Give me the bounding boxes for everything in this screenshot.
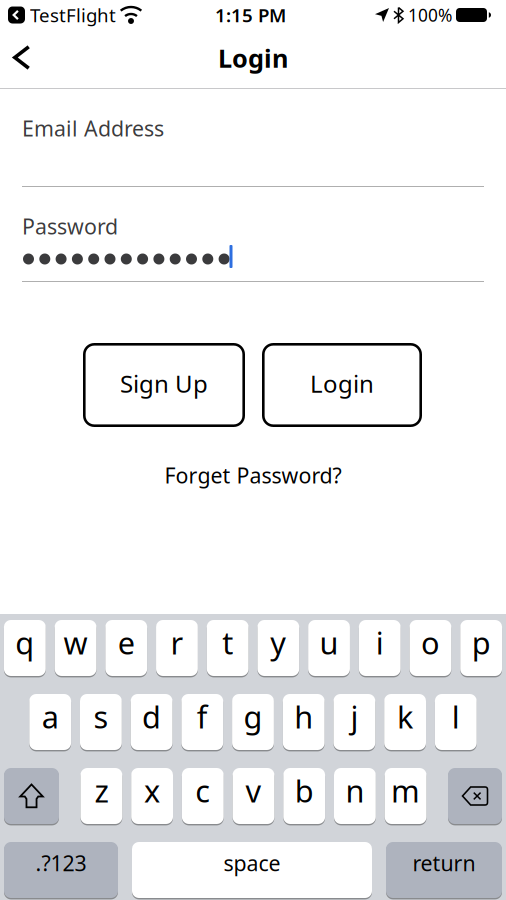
button[interactable]: return <box>386 842 502 898</box>
staticText: g <box>243 696 262 737</box>
button[interactable]: j <box>333 694 375 750</box>
staticText: m <box>391 770 420 811</box>
staticText: 1:15 PM <box>215 3 286 27</box>
staticText: l <box>452 696 460 737</box>
button[interactable]: x <box>131 768 173 824</box>
button[interactable]: .?123 <box>4 842 118 898</box>
button[interactable]: b <box>283 768 325 824</box>
button[interactable]: z <box>80 768 122 824</box>
staticText: TestFlight <box>30 3 116 27</box>
button[interactable]: Delete <box>448 768 502 824</box>
staticText: Forget Password? <box>164 461 341 489</box>
button[interactable]: f <box>181 694 223 750</box>
button[interactable]: p <box>460 620 502 676</box>
button[interactable]: i <box>359 620 401 676</box>
staticText: s <box>93 696 108 737</box>
button[interactable]: g <box>232 694 274 750</box>
staticText: a <box>42 696 59 737</box>
staticText: c <box>195 770 210 811</box>
button[interactable]: l <box>435 694 477 750</box>
staticText: t <box>222 622 233 663</box>
button[interactable]: q <box>4 620 46 676</box>
staticText: Login <box>310 368 374 399</box>
button[interactable]: space <box>132 842 372 898</box>
staticText: Email Address <box>22 114 164 142</box>
staticText: Login <box>218 41 288 75</box>
staticText: .?123 <box>35 849 86 877</box>
staticText: j <box>350 696 358 737</box>
staticText: e <box>118 622 135 663</box>
staticText: d <box>142 696 161 737</box>
button[interactable]: y <box>257 620 299 676</box>
button[interactable]: Return to TestFlight <box>8 3 141 27</box>
staticText: q <box>15 622 34 663</box>
staticText: v <box>245 770 261 811</box>
button[interactable]: o <box>409 620 451 676</box>
staticText: Sign Up <box>120 368 208 399</box>
staticText: u <box>319 622 338 663</box>
button[interactable]: r <box>156 620 198 676</box>
staticText: n <box>345 770 364 811</box>
button[interactable]: v <box>233 768 274 824</box>
staticText: z <box>94 770 108 811</box>
button[interactable]: Login <box>262 343 422 427</box>
staticText: x <box>144 770 160 811</box>
button[interactable]: c <box>182 768 224 824</box>
staticText: h <box>294 696 313 737</box>
button[interactable]: a <box>29 694 71 750</box>
staticText: Password <box>22 212 118 240</box>
button[interactable]: d <box>131 694 172 750</box>
button[interactable]: Shift <box>4 768 59 824</box>
staticText: f <box>197 696 208 737</box>
button[interactable]: k <box>384 694 426 750</box>
button[interactable]: w <box>55 620 96 676</box>
button[interactable]: n <box>334 768 376 824</box>
button[interactable]: m <box>385 768 426 824</box>
button[interactable]: Sign Up <box>83 343 245 427</box>
staticText: space <box>223 849 280 877</box>
staticText: w <box>63 622 87 663</box>
button[interactable]: u <box>308 620 350 676</box>
button[interactable]: Forget Password? <box>164 461 341 489</box>
staticText: i <box>376 622 384 663</box>
staticText: r <box>170 622 183 663</box>
staticText: 100% <box>408 3 452 26</box>
button[interactable]: Back <box>5 37 38 78</box>
staticText: y <box>270 622 286 663</box>
staticText: p <box>472 622 491 663</box>
staticText: return <box>412 849 475 877</box>
button[interactable]: s <box>80 694 122 750</box>
button[interactable]: h <box>283 694 325 750</box>
staticText: k <box>397 696 413 737</box>
button[interactable]: e <box>105 620 147 676</box>
staticText: b <box>295 770 314 811</box>
staticText: o <box>421 622 440 663</box>
button[interactable]: t <box>207 620 248 676</box>
